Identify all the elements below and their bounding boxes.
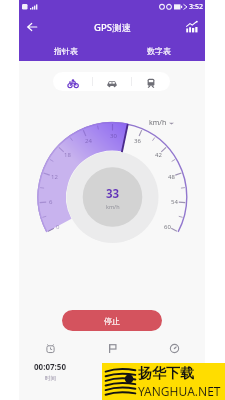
staticText: km/h	[106, 203, 120, 210]
staticText: 数字表	[147, 46, 171, 56]
button[interactable]: Back	[22, 17, 42, 37]
staticText: YANGHUA.NET	[138, 383, 221, 399]
button[interactable]: 数字表	[112, 40, 205, 61]
button[interactable]: km/h	[149, 118, 174, 128]
staticText: 0	[56, 223, 60, 231]
staticText: 12	[51, 173, 58, 181]
staticText: 扬华下载	[138, 365, 194, 383]
staticText: 24	[85, 137, 92, 145]
staticText: GPS测速	[94, 21, 131, 34]
staticText: 00:07:50	[34, 361, 66, 372]
button[interactable]: 停止	[62, 310, 162, 331]
staticText: 42	[155, 151, 162, 159]
staticText: 33	[106, 186, 120, 202]
staticText: 48	[168, 173, 175, 181]
button[interactable]: Car	[93, 72, 131, 91]
button[interactable]: Statistics	[182, 17, 202, 37]
button[interactable]	[143, 340, 205, 384]
staticText: 时间	[45, 375, 56, 382]
staticText: 60	[164, 223, 171, 231]
button[interactable]: Motorcycle	[53, 72, 92, 91]
staticText: 6	[49, 198, 53, 206]
staticText: 30	[110, 132, 117, 140]
staticText: 18	[64, 151, 71, 159]
staticText: 指针表	[54, 46, 78, 56]
staticText: 36	[134, 137, 141, 145]
staticText: km/h	[149, 118, 167, 128]
staticText: 停止	[104, 316, 120, 326]
staticText: 54	[171, 198, 178, 206]
button[interactable]: Train	[132, 72, 170, 91]
button[interactable]: 00:07:50	[19, 340, 81, 384]
button[interactable]	[81, 340, 143, 384]
staticText: 3:52	[189, 2, 203, 12]
button[interactable]: 指针表	[19, 40, 112, 61]
